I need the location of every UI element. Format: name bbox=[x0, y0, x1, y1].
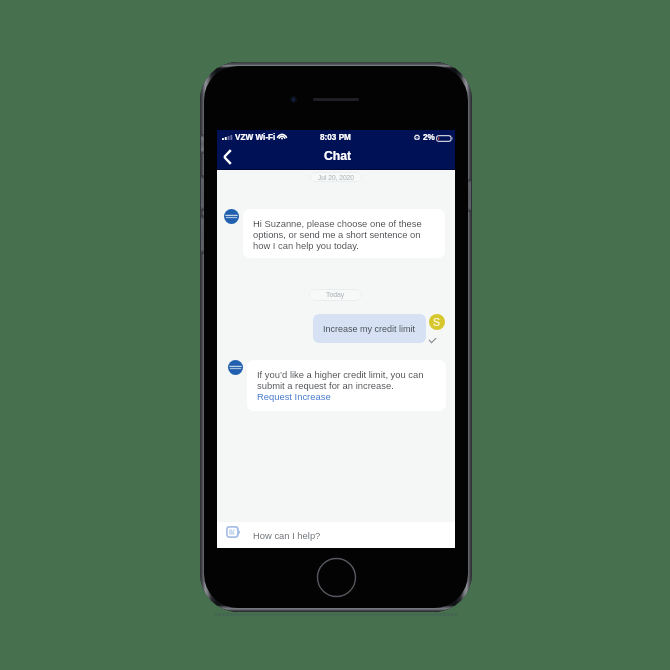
button[interactable]: How can I help? bbox=[217, 522, 455, 548]
staticText: Increase my credit limit bbox=[323, 324, 416, 334]
staticText: 8:03 PM bbox=[320, 133, 351, 142]
button[interactable]: Back bbox=[217, 149, 241, 170]
staticText: Hi Suzanne, please choose one of these o… bbox=[253, 218, 423, 251]
staticText: Today bbox=[326, 291, 345, 299]
button[interactable]: Increase my credit limit bbox=[313, 314, 426, 343]
staticText: How can I help? bbox=[253, 530, 321, 541]
staticText: 2% bbox=[423, 133, 435, 142]
staticText: If you’d like a higher credit limit, you… bbox=[257, 369, 427, 391]
button[interactable]: If you’d like a higher credit limit, you… bbox=[247, 360, 446, 411]
staticText: S bbox=[433, 316, 441, 328]
staticText: VZW Wi-Fi bbox=[235, 133, 276, 142]
staticText: Chat bbox=[324, 149, 352, 163]
button[interactable]: Request Increase bbox=[257, 391, 331, 402]
staticText: Jul 20, 2020 bbox=[318, 174, 354, 181]
button[interactable]: Hi Suzanne, please choose one of these o… bbox=[243, 209, 445, 258]
